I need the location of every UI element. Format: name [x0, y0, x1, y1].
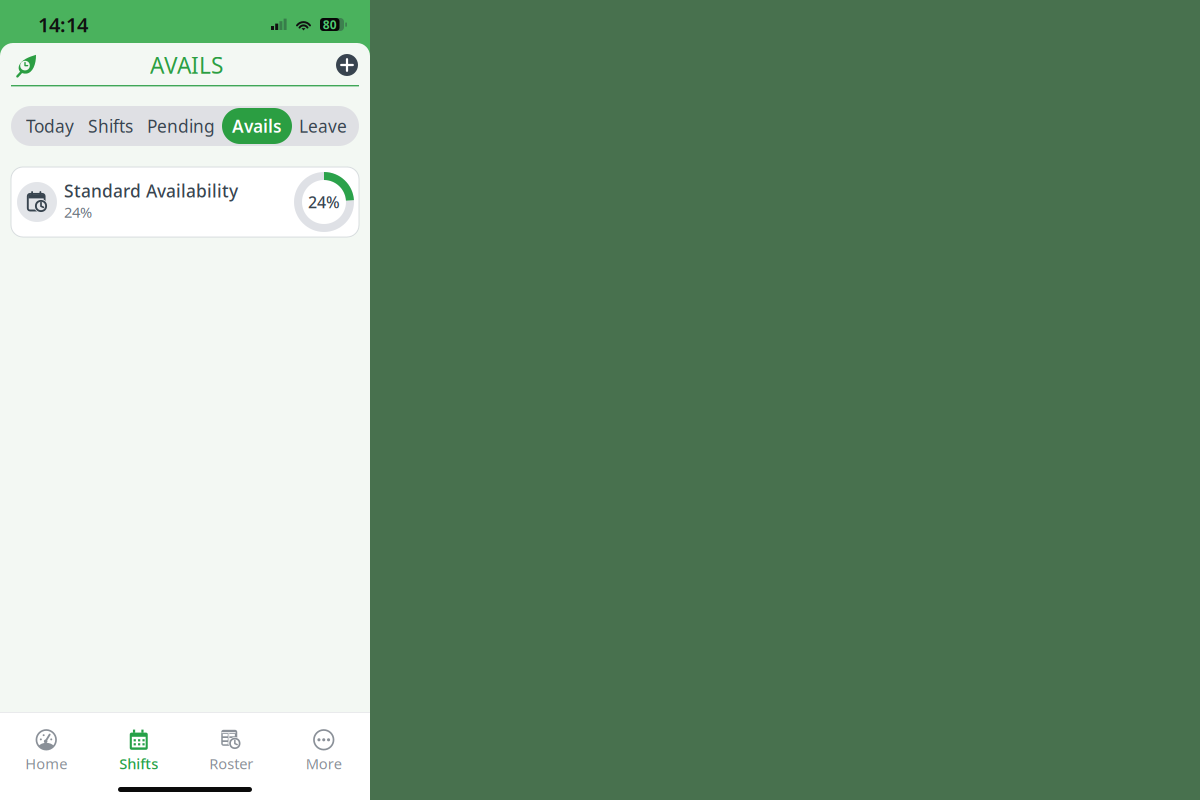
button[interactable]: Add: [332, 50, 362, 80]
staticText: Avails: [232, 114, 282, 137]
staticText: 24%: [308, 191, 340, 213]
staticText: 14:14: [38, 11, 88, 38]
button[interactable]: Today: [19, 106, 81, 146]
button[interactable]: Shifts: [81, 106, 140, 146]
staticText: 24%: [64, 202, 92, 222]
staticText: More: [306, 754, 342, 773]
staticText: Pending: [147, 114, 215, 137]
staticText: 80: [323, 16, 337, 32]
button[interactable]: Roster: [185, 713, 277, 779]
staticText: Today: [26, 114, 74, 137]
staticText: Standard Availability: [64, 179, 238, 202]
button[interactable]: Home: [0, 713, 92, 779]
button[interactable]: Shifts: [92, 713, 185, 779]
button[interactable]: Logo: [11, 50, 41, 80]
staticText: AVAILS: [150, 50, 223, 80]
staticText: Home: [25, 754, 67, 773]
staticText: Shifts: [119, 754, 158, 773]
button[interactable]: Avails: [222, 108, 292, 144]
button[interactable]: More: [277, 713, 370, 779]
button[interactable]: Pending: [140, 106, 222, 146]
button[interactable]: Standard Availability: [11, 167, 359, 237]
button[interactable]: Leave: [292, 106, 354, 146]
staticText: Shifts: [88, 114, 133, 137]
staticText: Leave: [299, 114, 347, 137]
staticText: Roster: [209, 754, 253, 773]
